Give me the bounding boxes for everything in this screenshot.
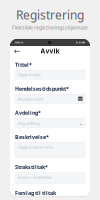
staticText: Avvik [40, 47, 59, 55]
button[interactable]: Velg dato og tid [15, 94, 85, 103]
button[interactable]: Beskriv strakstiltak [15, 172, 85, 183]
staticText: Avdeling* [15, 109, 41, 116]
staticText: ← [14, 46, 21, 56]
staticText: Hendelsestidspunkt* [15, 85, 69, 92]
staticText: ⌄ [78, 120, 82, 126]
staticText: Velg avdeling [17, 121, 39, 126]
staticText: Forslag til tiltak [15, 189, 56, 196]
staticText: Velg dato og tid [17, 96, 42, 101]
button[interactable]: Oppgi en tittel [15, 70, 85, 79]
staticText: Beskriv strakstiltak [17, 174, 51, 180]
staticText: Oppgi en beskrivelse [17, 144, 53, 150]
button[interactable]: Velg avdeling [15, 118, 85, 127]
staticText: Strakstiltak* [15, 163, 48, 170]
staticText: Fleksible registreringsskjemaer [12, 24, 88, 31]
button[interactable]: Tilbake [13, 46, 22, 55]
button[interactable]: Oppgi en beskrivelse [15, 142, 85, 157]
staticText: Oppgi en tittel [17, 72, 40, 77]
staticText: Registrering [16, 7, 84, 23]
staticText: Tittel* [15, 61, 32, 68]
staticText: Beskrivelse* [15, 133, 49, 140]
